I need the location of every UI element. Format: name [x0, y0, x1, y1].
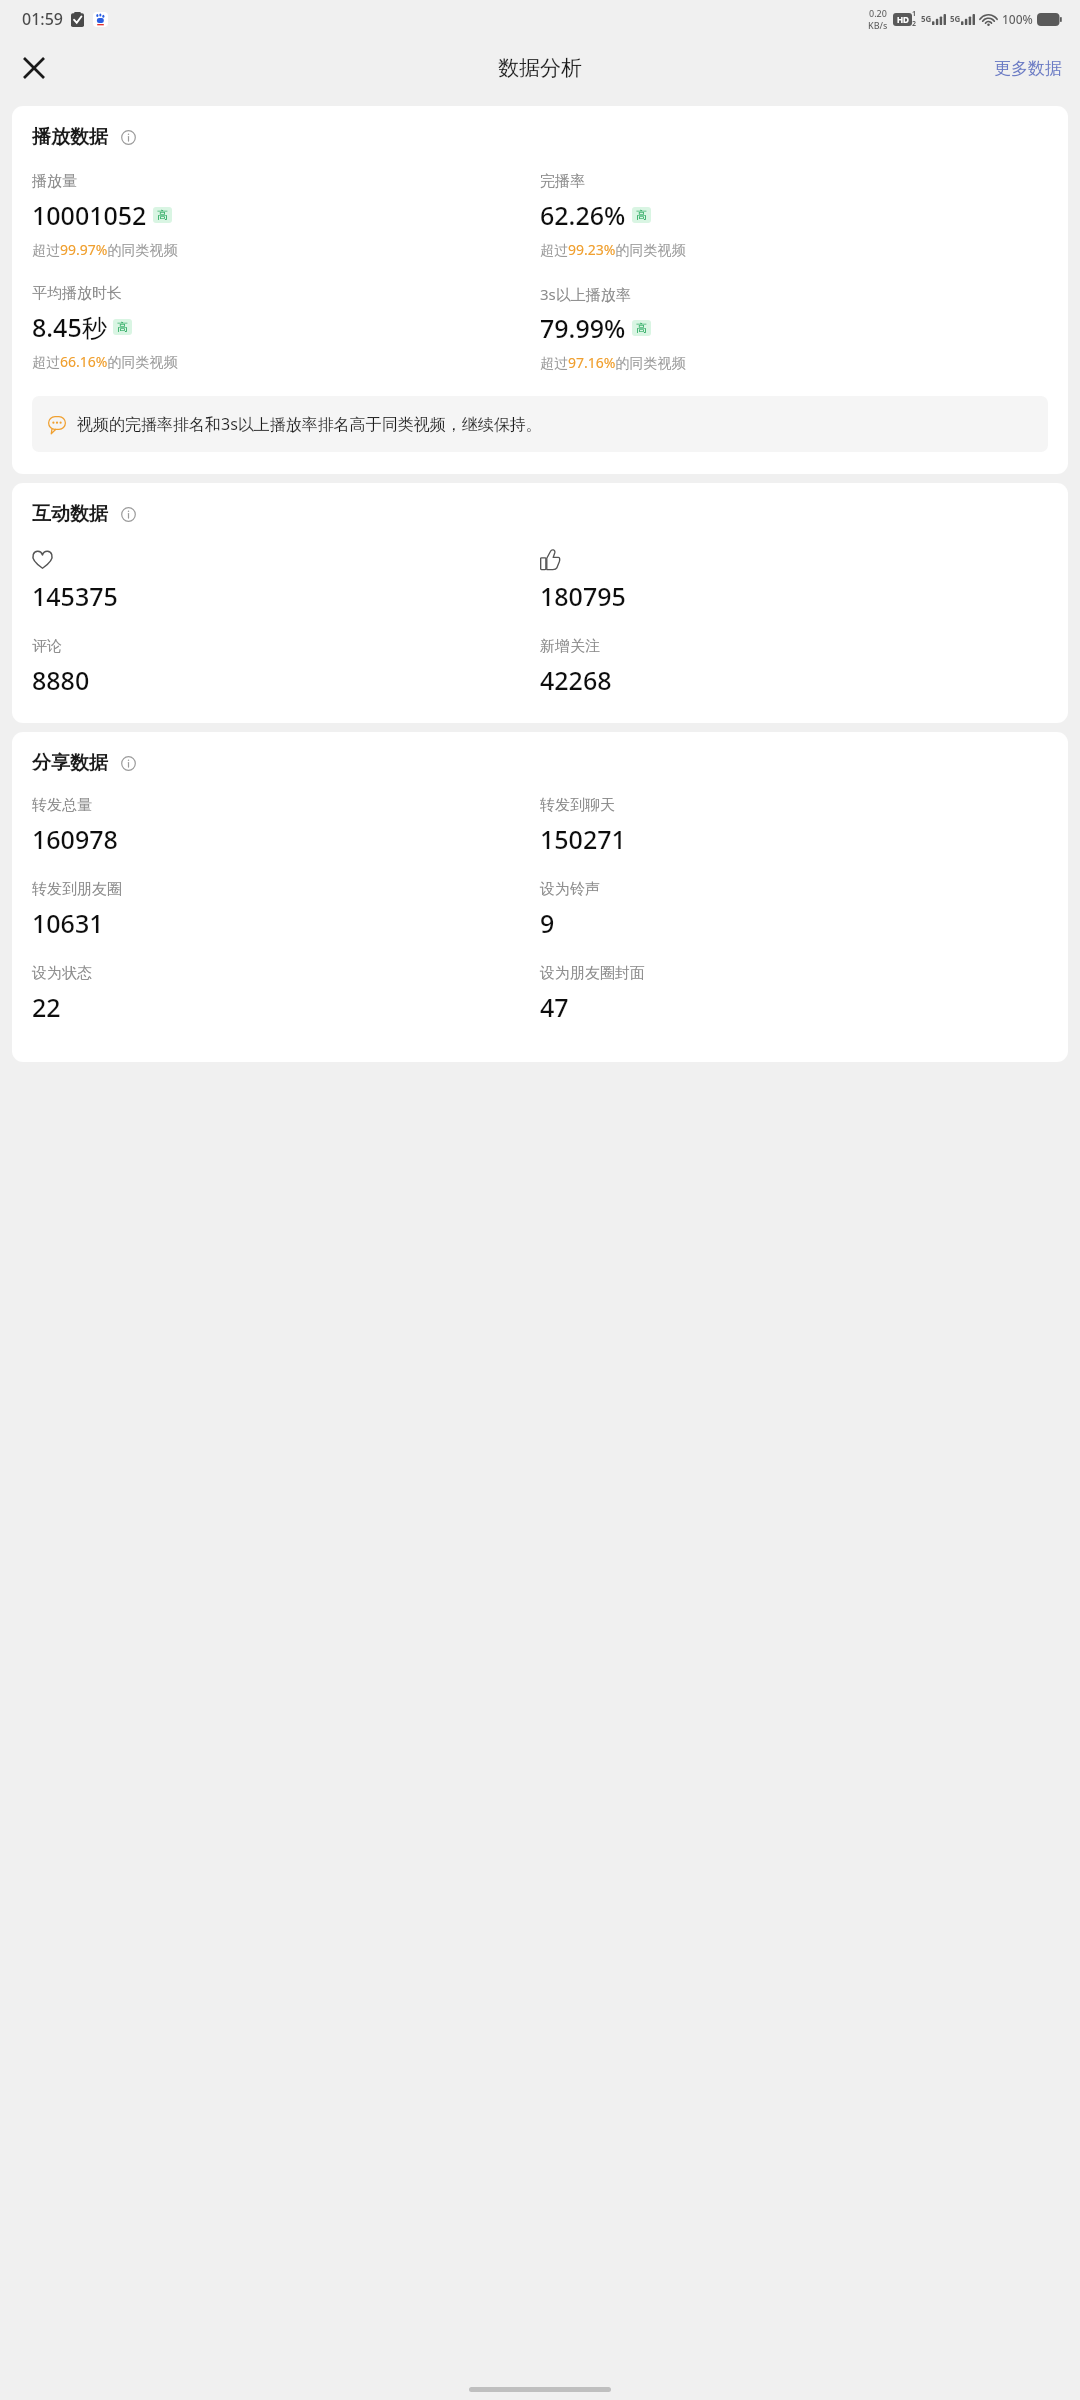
- staticText: 79.99%: [540, 311, 626, 345]
- staticText: 播放数据: [32, 125, 108, 149]
- staticText: 新增关注: [540, 637, 600, 656]
- staticText: 高: [636, 321, 647, 335]
- staticText: 转发总量: [32, 796, 92, 815]
- staticText: 22: [32, 990, 61, 1024]
- button[interactable]: 更多数据: [976, 46, 1080, 91]
- staticText: 1: [912, 9, 917, 19]
- staticText: 超过97.16%的同类视频: [540, 353, 686, 372]
- staticText: 160978: [32, 822, 118, 856]
- staticText: 设为铃声: [540, 880, 600, 899]
- staticText: 01:59: [22, 8, 63, 30]
- staticText: 分享数据: [32, 751, 108, 775]
- staticText: 10631: [32, 906, 104, 940]
- staticText: 180795: [540, 579, 626, 613]
- staticText: 设为朋友圈封面: [540, 964, 645, 983]
- button[interactable]: Close: [10, 44, 58, 92]
- staticText: 5G: [950, 13, 961, 24]
- staticText: 高: [117, 320, 128, 334]
- staticText: 145375: [32, 579, 118, 613]
- button[interactable]: 播放数据: [12, 106, 1068, 474]
- staticText: 转发到朋友圈: [32, 880, 122, 899]
- button[interactable]: Info about 分享数据: [115, 750, 141, 776]
- staticText: 完播率: [540, 172, 585, 191]
- staticText: 9: [540, 906, 555, 940]
- staticText: 2: [912, 19, 917, 29]
- staticText: 3s以上播放率: [540, 284, 631, 304]
- staticText: 平均播放时长: [32, 284, 122, 303]
- staticText: 150271: [540, 822, 626, 856]
- staticText: 10001052: [32, 198, 147, 232]
- staticText: 数据分析: [498, 55, 582, 81]
- button[interactable]: 分享数据: [12, 732, 1068, 1062]
- staticText: 0.20: [869, 7, 887, 19]
- staticText: KB/s: [868, 19, 888, 31]
- button[interactable]: Info about 播放数据: [115, 124, 141, 150]
- staticText: 超过99.97%的同类视频: [32, 240, 178, 259]
- staticText: 超过66.16%的同类视频: [32, 352, 178, 371]
- staticText: 100%: [1002, 11, 1033, 27]
- staticText: 视频的完播率排名和3s以上播放率排名高于同类视频，继续保持。: [77, 413, 542, 435]
- staticText: 转发到聊天: [540, 796, 615, 815]
- staticText: 评论: [32, 637, 62, 656]
- staticText: 47: [540, 990, 569, 1024]
- staticText: 设为状态: [32, 964, 92, 983]
- button[interactable]: Info about 互动数据: [115, 501, 141, 527]
- staticText: 超过99.23%的同类视频: [540, 240, 686, 259]
- staticText: 高: [636, 208, 647, 222]
- staticText: 互动数据: [32, 502, 108, 526]
- staticText: 5G: [921, 13, 932, 24]
- staticText: HD: [897, 14, 909, 25]
- staticText: 42268: [540, 663, 612, 697]
- staticText: 更多数据: [994, 58, 1062, 79]
- staticText: 8.45秒: [32, 310, 107, 344]
- staticText: 高: [157, 208, 168, 222]
- staticText: 8880: [32, 663, 90, 697]
- staticText: 播放量: [32, 172, 77, 191]
- staticText: 62.26%: [540, 198, 626, 232]
- button[interactable]: 互动数据: [12, 483, 1068, 723]
